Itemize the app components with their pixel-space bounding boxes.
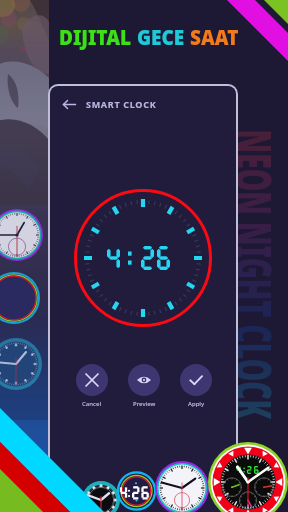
button[interactable]: Apply <box>180 364 212 408</box>
staticText: SMART CLOCK <box>86 98 157 110</box>
staticText: SAAT <box>190 23 239 52</box>
staticText: Apply <box>188 400 205 408</box>
staticText: DIJITAL <box>59 23 137 52</box>
button[interactable]: Preview <box>128 364 160 408</box>
staticText: Preview <box>133 400 156 408</box>
staticText: GECE <box>137 23 190 52</box>
button[interactable]: Back <box>61 96 77 112</box>
button[interactable]: Cancel <box>76 364 108 408</box>
staticText: Cancel <box>82 400 102 408</box>
staticText: NEON NIGHT CLOCK <box>220 130 288 419</box>
